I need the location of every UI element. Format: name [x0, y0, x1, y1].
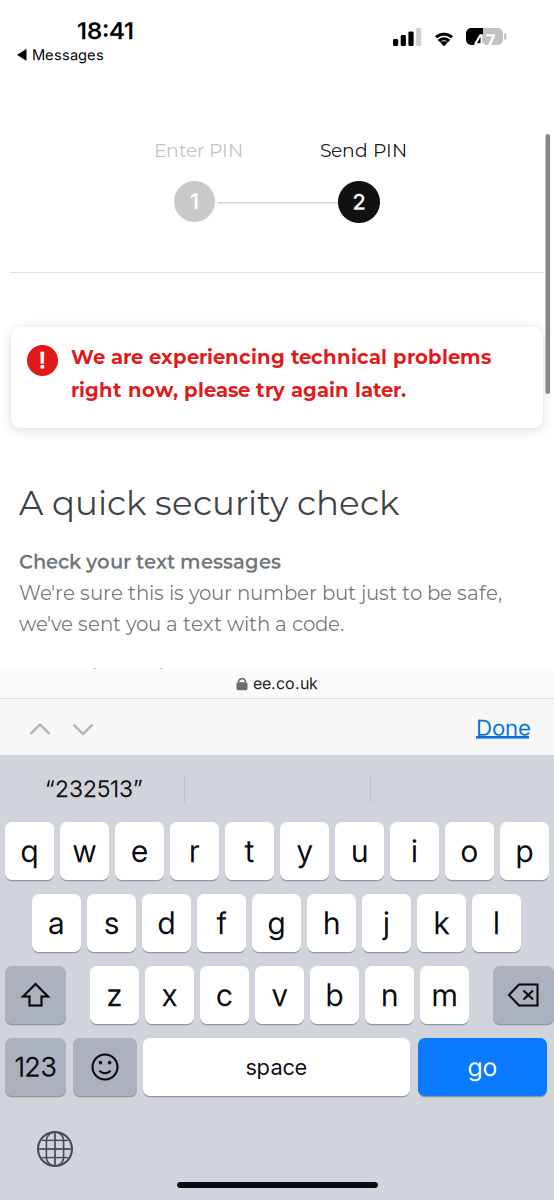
button[interactable]: z — [90, 966, 139, 1024]
staticText: d — [157, 904, 175, 941]
staticText: p — [515, 832, 533, 869]
button[interactable]: n — [365, 966, 414, 1024]
button[interactable]: r — [170, 822, 219, 880]
button[interactable]: q — [5, 822, 54, 880]
button[interactable]: “232513” — [24, 766, 164, 812]
button[interactable]: Next field — [63, 710, 103, 749]
staticText: m — [431, 976, 457, 1013]
staticText: f — [216, 904, 226, 941]
button[interactable]: l — [472, 894, 521, 952]
button[interactable]: a — [32, 894, 81, 952]
staticText: Done — [476, 714, 531, 741]
staticText: Send PIN — [320, 139, 407, 162]
button[interactable]: Delete — [493, 966, 554, 1024]
staticText: a — [48, 904, 65, 941]
staticText: we've sent you a text with a code. — [19, 612, 344, 636]
staticText: e — [131, 832, 148, 869]
staticText: x — [161, 976, 177, 1013]
button[interactable]: p — [500, 822, 549, 880]
button[interactable]: Previous field — [20, 710, 60, 749]
button[interactable]: f — [197, 894, 246, 952]
button[interactable]: Done — [468, 712, 536, 748]
button[interactable]: s — [87, 894, 136, 952]
staticText: right now, please try again later. — [71, 378, 406, 402]
button[interactable]: b — [310, 966, 359, 1024]
staticText: c — [216, 976, 233, 1013]
button[interactable]: g — [252, 894, 301, 952]
button[interactable]: c — [200, 966, 249, 1024]
staticText: y — [296, 832, 312, 869]
button[interactable]: m — [420, 966, 469, 1024]
staticText: 2 — [352, 189, 365, 215]
staticText: r — [189, 832, 200, 869]
staticText: ! — [38, 345, 46, 374]
staticText: 18:41 — [77, 16, 134, 45]
staticText: We're sure this is your number but just … — [19, 581, 502, 605]
button[interactable]: t — [225, 822, 274, 880]
staticText: i — [411, 832, 418, 869]
button[interactable]: Space — [143, 1038, 410, 1096]
button[interactable]: o — [445, 822, 494, 880]
button[interactable]: Numbers — [5, 1038, 66, 1096]
staticText: A quick security check — [19, 482, 399, 523]
staticText: go — [467, 1052, 497, 1082]
staticText: t — [244, 832, 254, 869]
button[interactable]: Go — [418, 1038, 547, 1096]
staticText: 123 — [14, 1051, 56, 1083]
staticText: l — [493, 904, 500, 941]
staticText: Messages — [32, 46, 104, 64]
staticText: Check your text messages — [19, 550, 281, 574]
staticText: v — [271, 976, 287, 1013]
button[interactable]: h — [307, 894, 356, 952]
button[interactable]: j — [362, 894, 411, 952]
staticText: z — [106, 976, 122, 1013]
staticText: h — [323, 904, 340, 941]
staticText: 1 — [190, 189, 199, 214]
button[interactable]: d — [142, 894, 191, 952]
staticText: We are experiencing technical problems — [71, 345, 491, 369]
staticText: o — [460, 832, 478, 869]
staticText: q — [20, 832, 38, 869]
button[interactable]: k — [417, 894, 466, 952]
button[interactable]: Messages — [14, 43, 107, 67]
staticText: g — [267, 904, 285, 941]
staticText: s — [104, 904, 119, 941]
button[interactable]: ee.co.uk — [0, 669, 554, 698]
staticText: space — [245, 1054, 307, 1080]
button[interactable]: Next keyboard — [28, 1122, 82, 1176]
button[interactable]: i — [390, 822, 439, 880]
button[interactable]: Shift — [5, 966, 66, 1024]
staticText: u — [351, 832, 368, 869]
button[interactable]: w — [60, 822, 109, 880]
staticText: “232513” — [45, 775, 143, 803]
staticText: b — [325, 976, 343, 1013]
staticText: k — [433, 904, 449, 941]
button[interactable]: y — [280, 822, 329, 880]
button[interactable]: Emoji — [73, 1038, 137, 1096]
staticText: 47 — [473, 30, 495, 51]
staticText: j — [383, 904, 390, 941]
button[interactable]: e — [115, 822, 164, 880]
button[interactable]: x — [145, 966, 194, 1024]
staticText: n — [381, 976, 398, 1013]
staticText: ee.co.uk — [253, 674, 318, 693]
staticText: Enter PIN — [154, 139, 243, 162]
button[interactable]: u — [335, 822, 384, 880]
staticText: w — [72, 832, 96, 869]
button[interactable]: v — [255, 966, 304, 1024]
